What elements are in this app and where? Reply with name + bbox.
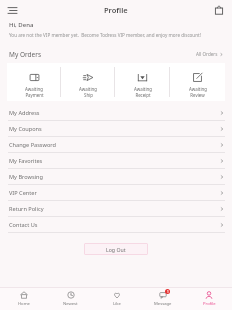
staticText: Newest xyxy=(63,301,78,307)
button[interactable]: VIP Center xyxy=(0,185,232,201)
button[interactable]: Awaiting xyxy=(61,63,115,101)
staticText: Profile xyxy=(203,301,216,307)
button[interactable]: Awaiting xyxy=(170,63,225,101)
staticText: Receipt xyxy=(135,92,151,98)
button[interactable]: Awaiting xyxy=(7,63,61,101)
button[interactable]: Menu xyxy=(4,2,20,18)
button[interactable]: My Coupons xyxy=(0,121,232,137)
staticText: My Favorites xyxy=(9,157,43,165)
button[interactable]: Awaiting xyxy=(115,63,170,101)
button[interactable]: Like xyxy=(94,288,140,310)
staticText: Return Policy xyxy=(9,205,44,213)
staticText: Payment xyxy=(25,92,44,98)
button[interactable]: All Orders xyxy=(194,49,225,59)
staticText: 1 xyxy=(167,290,169,294)
button[interactable]: Newest xyxy=(47,288,94,310)
staticText: Profile xyxy=(104,5,128,15)
staticText: My Browsing xyxy=(9,173,43,181)
button[interactable]: Return Policy xyxy=(0,201,232,217)
staticText: All Orders xyxy=(196,51,218,57)
button[interactable]: Home xyxy=(0,288,47,310)
staticText: Hi, Dena xyxy=(9,21,34,29)
staticText: Contact Us xyxy=(9,221,38,229)
button[interactable]: Log Out xyxy=(84,243,148,255)
staticText: Home xyxy=(18,301,30,307)
staticText: Message xyxy=(154,301,172,307)
button[interactable]: 1 xyxy=(140,288,186,310)
button[interactable]: My Favorites xyxy=(0,153,232,169)
staticText: You are not the VIP member yet. Become T… xyxy=(9,32,201,38)
staticText: VIP Center xyxy=(9,189,37,197)
button[interactable]: Shopping bag xyxy=(211,2,227,18)
button[interactable]: Change Password xyxy=(0,137,232,153)
button[interactable]: My Browsing xyxy=(0,169,232,185)
staticText: Awaiting xyxy=(25,86,43,92)
staticText: Ship xyxy=(84,92,93,98)
button[interactable]: Profile xyxy=(186,288,232,310)
staticText: Log Out xyxy=(106,246,126,253)
staticText: My Coupons xyxy=(9,125,42,133)
staticText: Awaiting xyxy=(79,86,97,92)
staticText: Change Password xyxy=(9,141,56,149)
staticText: My Address xyxy=(9,109,40,117)
staticText: Awaiting xyxy=(189,86,207,92)
staticText: Like xyxy=(113,301,121,307)
button[interactable]: My Address xyxy=(0,105,232,121)
staticText: My Orders xyxy=(9,50,41,59)
staticText: Awaiting xyxy=(134,86,152,92)
button[interactable]: Contact Us xyxy=(0,217,232,233)
staticText: Review xyxy=(190,92,205,98)
